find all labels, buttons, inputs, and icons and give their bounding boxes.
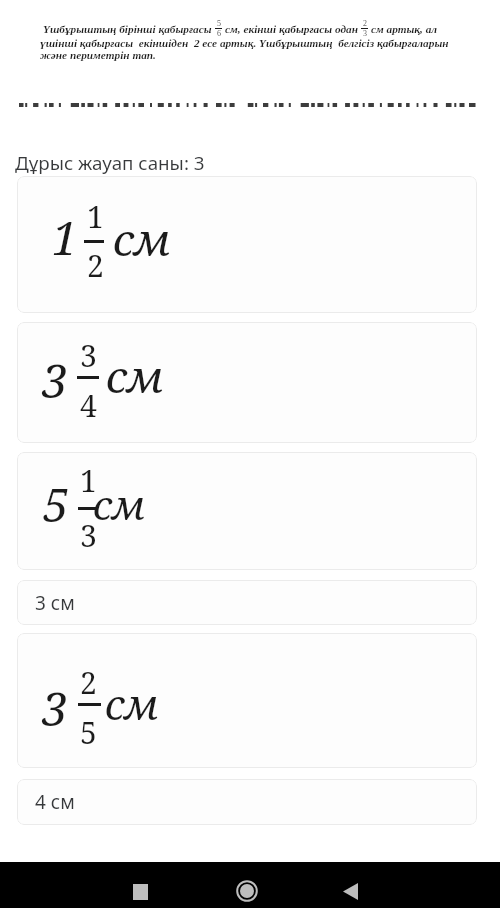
button[interactable]: 1 bbox=[17, 176, 477, 313]
staticText: 3 bbox=[363, 29, 367, 38]
staticText: 2 bbox=[363, 19, 367, 28]
staticText: 5 bbox=[80, 712, 97, 753]
button[interactable]: Back bbox=[310, 862, 390, 908]
button[interactable]: Recent apps bbox=[100, 862, 183, 908]
staticText: 5 bbox=[217, 19, 221, 28]
staticText: 4 bbox=[80, 385, 97, 426]
staticText: см bbox=[105, 676, 159, 732]
button[interactable]: 4 см bbox=[17, 779, 477, 825]
button[interactable]: 5 bbox=[17, 452, 477, 570]
button[interactable]: 3 bbox=[17, 322, 477, 443]
button[interactable]: 3 см bbox=[17, 580, 477, 625]
staticText: см, екінші қабырғасы одан bbox=[225, 23, 358, 36]
staticText: 3 bbox=[42, 349, 68, 412]
staticText: 1 bbox=[80, 460, 97, 501]
staticText: 3 bbox=[80, 335, 97, 376]
staticText: 3 bbox=[80, 515, 97, 556]
staticText: 1 bbox=[52, 206, 78, 269]
staticText: 2 bbox=[87, 245, 104, 286]
staticText: см bbox=[113, 209, 171, 269]
staticText: 6 bbox=[217, 29, 221, 38]
staticText: см артық, ал bbox=[371, 23, 438, 36]
staticText: үшінші қабырғасы екіншіден 2 есе артық. … bbox=[40, 37, 449, 50]
staticText: 5 bbox=[43, 473, 69, 536]
staticText: см bbox=[106, 346, 164, 406]
staticText: Дұрыс жауап саны: 3 bbox=[15, 150, 205, 176]
staticText: 3 bbox=[42, 677, 68, 740]
staticText: см bbox=[93, 477, 145, 531]
staticText: 4 см bbox=[35, 789, 75, 815]
staticText: 2 bbox=[80, 662, 97, 703]
staticText: 3 см bbox=[35, 590, 75, 616]
staticText: 1 bbox=[87, 196, 104, 237]
staticText: Үшбұрыштың бірінші қабырғасы bbox=[43, 23, 212, 36]
staticText: және периметрін тап. bbox=[40, 49, 156, 62]
button[interactable]: Home bbox=[212, 862, 281, 908]
button[interactable]: 3 bbox=[17, 633, 477, 768]
